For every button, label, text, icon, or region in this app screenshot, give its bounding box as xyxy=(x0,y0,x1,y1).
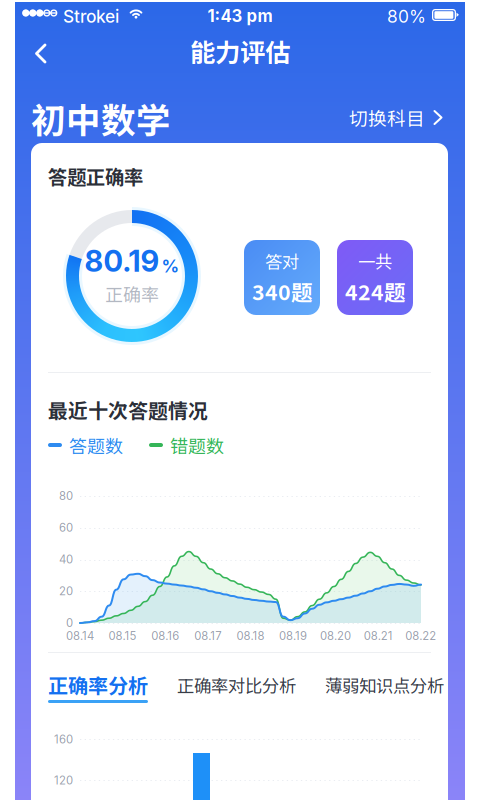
staticText: 正确率对比分析 xyxy=(177,672,296,698)
staticText: % xyxy=(161,256,179,277)
staticText: 120 xyxy=(54,774,73,787)
staticText: 08.18 xyxy=(236,629,264,643)
staticText: 80.19 xyxy=(84,243,159,279)
staticText: 20 xyxy=(59,584,73,598)
button[interactable]: 一共 xyxy=(337,240,413,315)
staticText: 40 xyxy=(59,553,73,566)
staticText: 能力评估 xyxy=(190,33,290,69)
staticText: 08.21 xyxy=(364,629,393,643)
staticText: 08.14 xyxy=(66,629,94,643)
staticText: 08.17 xyxy=(194,629,221,643)
staticText: 340题 xyxy=(252,276,312,306)
staticText: 切换科目 xyxy=(349,104,425,131)
staticText: 424题 xyxy=(345,276,405,306)
staticText: 80% xyxy=(387,6,426,27)
staticText: 错题数 xyxy=(170,432,224,458)
button[interactable]: 薄弱知识点分析 xyxy=(325,672,445,698)
staticText: 0 xyxy=(66,616,73,630)
staticText: 08.19 xyxy=(279,629,307,643)
staticText: 正确率分析 xyxy=(48,670,148,699)
staticText: 60 xyxy=(59,521,73,535)
staticText: 正确率 xyxy=(105,281,159,307)
staticText: 初中数学 xyxy=(31,93,171,143)
staticText: 08.16 xyxy=(151,629,179,643)
staticText: 答题数 xyxy=(69,432,123,458)
staticText: 薄弱知识点分析 xyxy=(325,672,444,698)
button[interactable]: 答对 xyxy=(244,240,320,315)
staticText: 答对 xyxy=(265,248,299,274)
staticText: 160 xyxy=(54,733,73,746)
staticText: 08.20 xyxy=(320,629,351,643)
staticText: 最近十次答题情况 xyxy=(48,395,208,424)
button[interactable]: Back xyxy=(21,30,61,77)
staticText: Strokei xyxy=(63,6,119,27)
button[interactable]: 切换科目 xyxy=(349,104,443,131)
staticText: 08.22 xyxy=(405,629,436,643)
staticText: 答题正确率 xyxy=(48,162,143,190)
staticText: 80 xyxy=(59,489,73,503)
staticText: 1:43 pm xyxy=(207,6,272,26)
button[interactable]: 正确率对比分析 xyxy=(177,672,297,698)
staticText: 一共 xyxy=(358,248,392,274)
button[interactable]: 正确率分析 xyxy=(48,670,149,704)
staticText: 08.15 xyxy=(109,629,137,643)
